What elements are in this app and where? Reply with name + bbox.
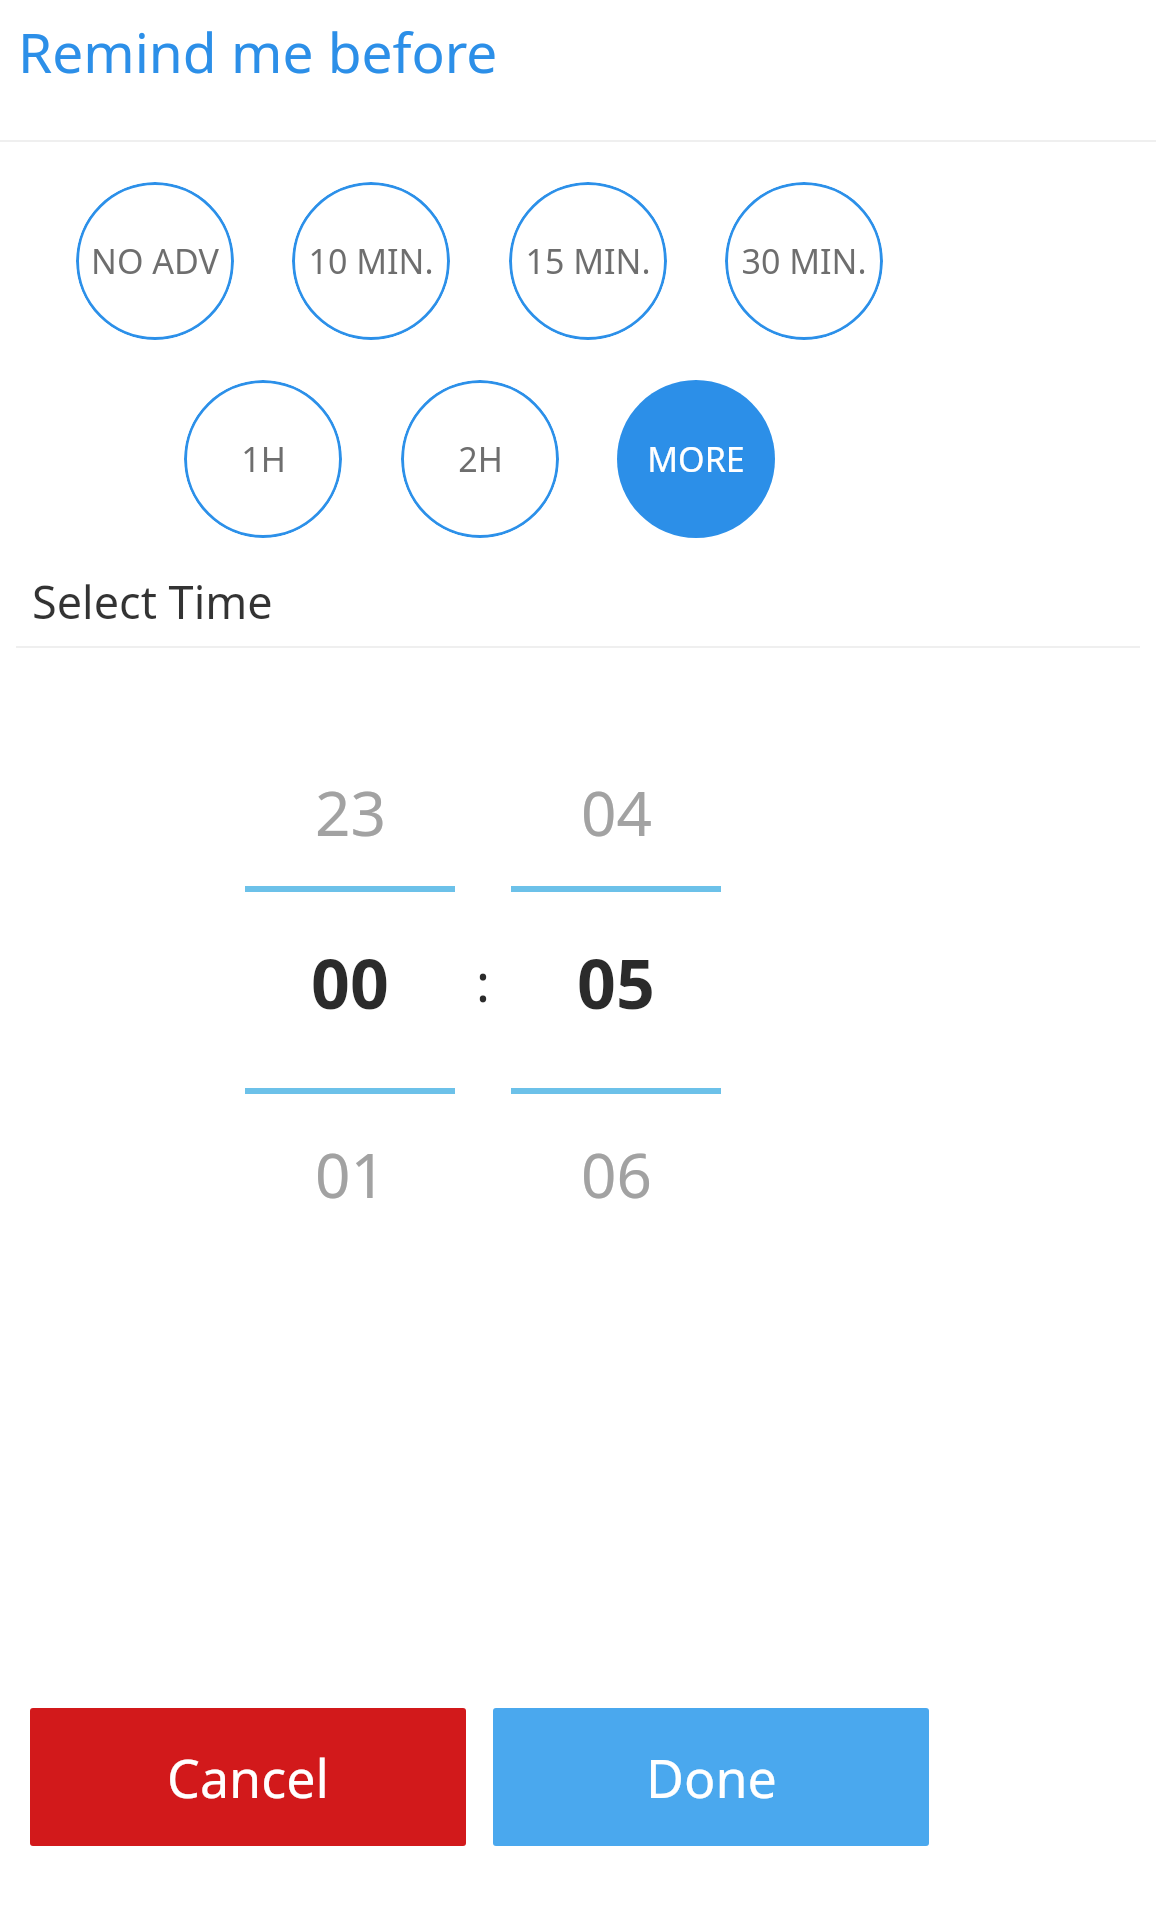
button[interactable]: 23 (243, 770, 457, 1288)
staticText: 10 MIN. (308, 238, 434, 284)
staticText: Remind me before (18, 14, 498, 89)
staticText: 04 (581, 770, 652, 854)
button[interactable]: MORE (617, 380, 775, 538)
button[interactable]: 1H (184, 380, 342, 538)
button[interactable]: 2H (401, 380, 559, 538)
staticText: 15 MIN. (525, 238, 651, 284)
staticText: : (476, 946, 490, 1017)
staticText: NO ADV (91, 238, 219, 284)
button[interactable]: Cancel (30, 1708, 466, 1846)
staticText: MORE (647, 436, 745, 482)
button[interactable]: NO ADV (76, 182, 234, 340)
staticText: Cancel (167, 1742, 329, 1813)
button[interactable]: 30 MIN. (725, 182, 883, 340)
staticText: 00 (311, 936, 389, 1029)
staticText: 2H (458, 436, 503, 482)
staticText: 23 (315, 770, 386, 854)
staticText: 06 (581, 1132, 652, 1216)
staticText: Select Time (32, 571, 273, 632)
staticText: 01 (315, 1132, 386, 1216)
button[interactable]: 04 (509, 770, 723, 1288)
staticText: Done (646, 1742, 777, 1813)
button[interactable]: Done (493, 1708, 929, 1846)
button[interactable]: 10 MIN. (292, 182, 450, 340)
staticText: 1H (241, 436, 286, 482)
staticText: 05 (577, 936, 655, 1029)
staticText: 30 MIN. (741, 238, 867, 284)
button[interactable]: 15 MIN. (509, 182, 667, 340)
